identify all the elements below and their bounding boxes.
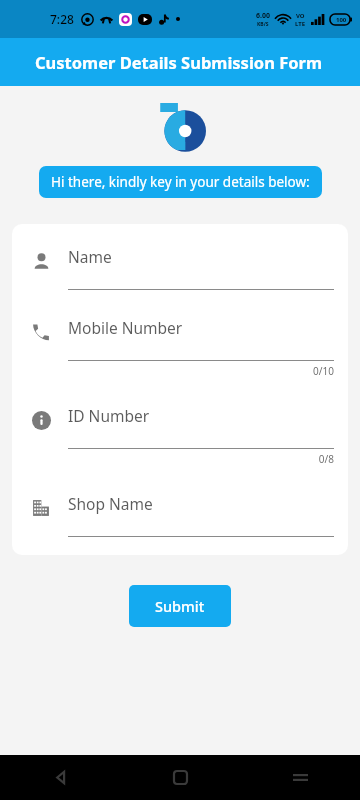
staticText: Mobile Number (68, 317, 183, 338)
button[interactable]: Shop Name (12, 493, 348, 537)
button[interactable]: Name (12, 246, 348, 290)
staticText: 0/8 (68, 452, 334, 466)
button[interactable]: Back (0, 755, 120, 800)
staticText: ID Number (68, 405, 150, 426)
button[interactable]: Home (120, 755, 240, 800)
staticText: LTE (295, 20, 306, 28)
staticText: KB/S (257, 21, 269, 28)
button[interactable]: Recent apps (240, 755, 360, 800)
staticText: 6.00 (256, 11, 270, 21)
button[interactable]: Mobile Number (12, 317, 348, 378)
button[interactable]: Hi there, kindly key in your details bel… (39, 166, 322, 198)
staticText: Hi there, kindly key in your details bel… (51, 173, 310, 191)
staticText: 100 (336, 16, 347, 24)
button[interactable]: Submit (129, 585, 231, 627)
staticText: VO (296, 12, 305, 20)
staticText: 0/10 (68, 364, 334, 378)
button[interactable]: ID Number (12, 405, 348, 466)
staticText: Customer Details Submission Form (35, 51, 323, 73)
staticText: Name (68, 246, 112, 267)
staticText: 7:28 (50, 11, 74, 27)
staticText: Shop Name (68, 493, 153, 514)
staticText: Submit (155, 596, 205, 616)
